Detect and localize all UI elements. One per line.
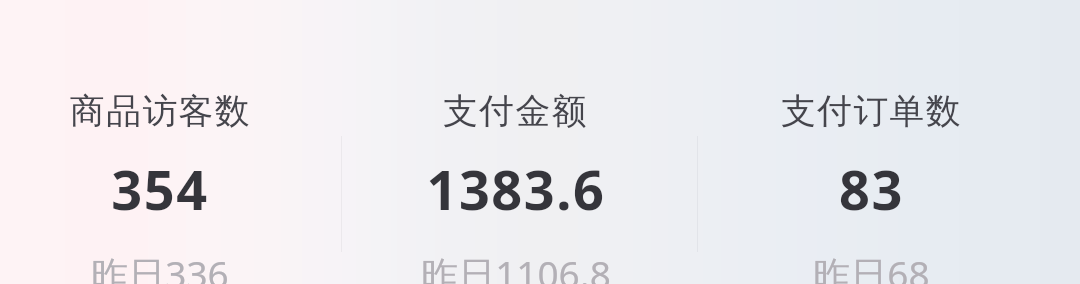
staticText: 83 bbox=[839, 152, 904, 226]
staticText: 354 bbox=[111, 152, 209, 226]
button[interactable]: 支付金额 1383.6 昨日1106.8 bbox=[338, 0, 693, 284]
staticText: 支付金额 bbox=[443, 89, 588, 133]
staticText: 支付订单数 bbox=[781, 89, 962, 133]
button[interactable]: 支付订单数 83 昨日68 bbox=[694, 0, 1049, 284]
staticText: 昨日336 bbox=[91, 248, 229, 284]
staticText: 商品访客数 bbox=[70, 89, 251, 133]
staticText: 1383.6 bbox=[426, 152, 606, 226]
button[interactable]: 商品访客数 354 昨日336 bbox=[0, 0, 337, 284]
staticText: 昨日68 bbox=[813, 248, 930, 284]
staticText: 昨日1106.8 bbox=[421, 248, 611, 284]
